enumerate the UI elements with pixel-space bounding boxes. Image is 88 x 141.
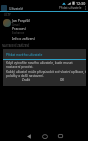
staticText: Přidat nového uživatele [6, 52, 43, 56]
button[interactable]: Pracovní [0, 26, 36, 34]
staticText: NASTAVENÍ ZAŘÍZENÍ [2, 44, 30, 48]
staticText: ÚČTY [4, 13, 11, 17]
staticText: Exchange [12, 31, 25, 34]
staticText: Gmail [12, 23, 20, 27]
button[interactable]: Uživatelé [0, 5, 26, 11]
button[interactable]: Zrušit [20, 77, 33, 83]
button[interactable]: Recent apps [53, 129, 68, 141]
button[interactable]: OK [58, 77, 67, 83]
staticText: 12:30 [76, 1, 86, 6]
button[interactable]: Home [37, 129, 52, 141]
staticText: Když vytvoříte nového uživatele, bude mu… [6, 61, 73, 69]
staticText: Uživatelé [9, 6, 24, 10]
staticText: Zrušit [22, 78, 31, 82]
button[interactable]: Přidat uživatele [58, 5, 83, 11]
button[interactable]: More options [83, 5, 88, 11]
staticText: Pracovní [12, 26, 26, 31]
staticText: Info o zařízení [12, 36, 35, 41]
staticText: Každý uživatel může přizpůsobit své vlas… [6, 70, 86, 78]
button[interactable]: Info o zařízení [0, 36, 36, 42]
staticText: Jan Pospíšil [12, 18, 30, 23]
button[interactable]: Back [22, 129, 37, 141]
staticText: Přidat uživatele [59, 6, 82, 10]
staticText: OK [60, 78, 65, 82]
button[interactable]: Jan Pospíšil [0, 17, 36, 26]
